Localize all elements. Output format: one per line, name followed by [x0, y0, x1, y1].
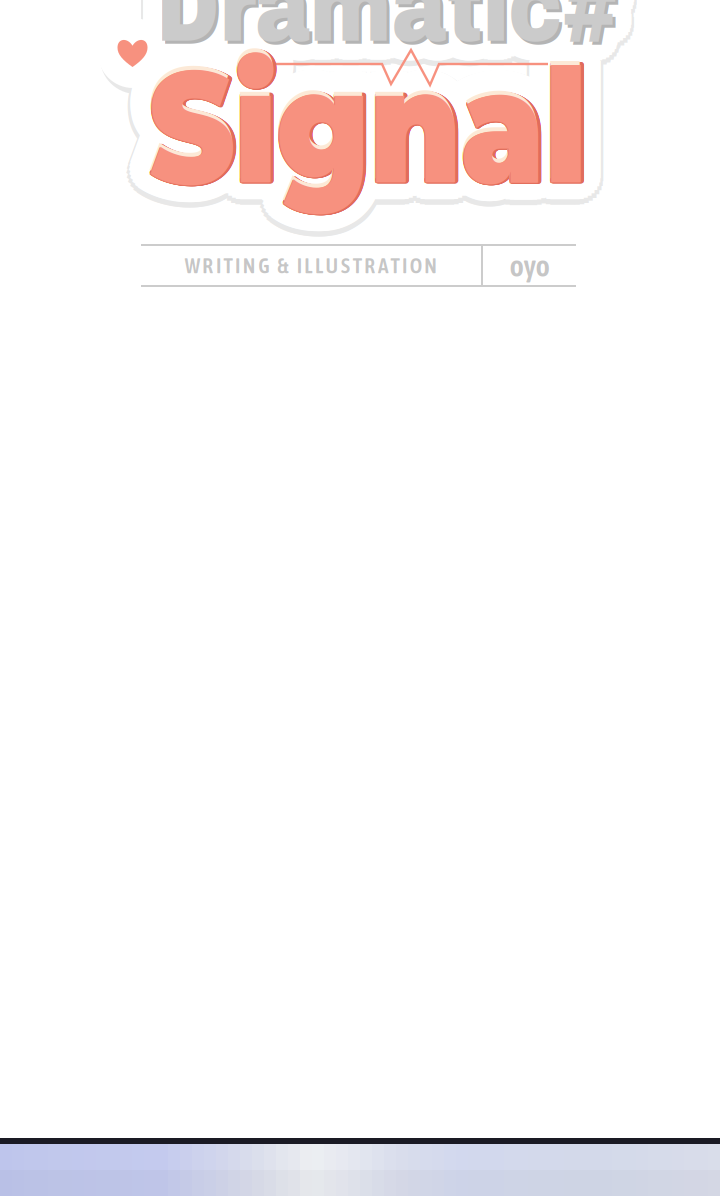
staticText: Signal	[148, 28, 676, 220]
staticText: Signal	[150, 31, 678, 223]
staticText: Dramatic#	[168, 0, 720, 46]
staticText: Dramatic#	[164, 0, 720, 84]
staticText: Dramatic#	[144, 0, 701, 72]
staticText: Signal	[165, 46, 693, 237]
staticText: Dramatic#	[141, 0, 698, 49]
staticText: Dramatic#	[153, 0, 710, 55]
staticText: Signal	[141, 27, 669, 219]
staticText: Dramatic#	[157, 0, 714, 68]
staticText: Signal	[170, 38, 698, 230]
staticText: Signal	[148, 29, 676, 221]
staticText: Signal	[163, 41, 691, 233]
staticText: Signal	[152, 28, 680, 220]
staticText: Signal	[153, 52, 681, 244]
staticText: Signal	[167, 34, 695, 226]
staticText: Signal	[148, 13, 676, 205]
staticText: Dramatic#	[152, 0, 709, 80]
staticText: Dramatic#	[165, 0, 720, 52]
staticText: Signal	[151, 19, 679, 211]
staticText: Signal	[145, 32, 673, 224]
staticText: Signal	[169, 30, 697, 222]
staticText: Signal	[159, 18, 687, 209]
staticText: Signal	[139, 51, 667, 242]
staticText: Signal	[150, 27, 678, 219]
staticText: Dramatic#	[160, 0, 717, 80]
staticText: Signal	[152, 47, 680, 238]
staticText: Signal	[145, 40, 673, 231]
staticText: Signal	[151, 40, 679, 231]
staticText: Dramatic#	[171, 0, 720, 79]
staticText: Signal	[152, 30, 680, 222]
staticText: Dramatic#	[177, 0, 720, 64]
staticText: Dramatic#	[136, 0, 693, 56]
staticText: Dramatic#	[134, 0, 691, 64]
staticText: Signal	[167, 18, 695, 210]
staticText: Dramatic#	[142, 0, 699, 64]
staticText: Dramatic#	[159, 0, 716, 78]
staticText: Signal	[133, 41, 661, 233]
staticText: Dramatic#	[177, 0, 720, 68]
staticText: Signal	[133, 35, 661, 227]
staticText: Signal	[132, 29, 660, 221]
staticText: Signal	[144, 20, 672, 212]
staticText: Signal	[151, 31, 679, 222]
staticText: Signal	[170, 20, 698, 212]
staticText: Signal	[148, 12, 676, 204]
staticText: Dramatic#	[160, 0, 717, 67]
staticText: Dramatic#	[162, 0, 719, 63]
staticText: Signal	[126, 38, 654, 230]
staticText: Signal	[165, 12, 693, 204]
staticText: Signal	[159, 40, 687, 232]
staticText: Signal	[148, 30, 676, 222]
staticText: Signal	[133, 23, 661, 215]
staticText: Signal	[171, 29, 699, 221]
staticText: Signal	[152, 29, 680, 221]
staticText: Dramatic#	[174, 0, 720, 69]
staticText: Dramatic#	[156, 0, 713, 48]
staticText: Signal	[148, 5, 676, 197]
staticText: Signal	[128, 16, 656, 208]
staticText: Dramatic#	[144, 0, 701, 46]
staticText: Signal	[151, 27, 679, 219]
staticText: Signal	[148, 40, 676, 232]
staticText: Signal	[144, 32, 672, 224]
staticText: Signal	[126, 20, 654, 212]
staticText: Signal	[148, 45, 676, 237]
staticText: Signal	[171, 24, 699, 216]
staticText: Signal	[130, 14, 658, 206]
staticText: Signal	[149, 31, 677, 223]
staticText: Signal	[141, 25, 669, 216]
staticText: Dramatic#	[140, 0, 697, 72]
staticText: Signal	[151, 27, 679, 219]
staticText: Dramatic#	[156, 0, 713, 61]
staticText: Dramatic#	[143, 0, 700, 59]
staticText: Signal	[153, 31, 681, 223]
staticText: Signal	[148, 47, 676, 239]
staticText: Dramatic#	[156, 0, 713, 68]
staticText: Signal	[149, 30, 677, 222]
staticText: Dramatic#	[136, 0, 693, 72]
staticText: Signal	[150, 31, 678, 223]
staticText: Dramatic#	[145, 0, 702, 45]
staticText: Dramatic#	[156, 0, 713, 74]
staticText: Dramatic#	[137, 0, 694, 65]
staticText: Dramatic#	[167, 0, 720, 54]
staticText: Dramatic#	[158, 0, 715, 55]
staticText: Signal	[143, 6, 671, 198]
staticText: Signal	[162, 29, 690, 220]
staticText: Signal	[134, 26, 662, 218]
staticText: Dramatic#	[161, 0, 718, 65]
staticText: Dramatic#	[175, 0, 720, 61]
staticText: Dramatic#	[163, 0, 720, 79]
staticText: Signal	[151, 45, 679, 236]
staticText: Signal	[139, 7, 667, 199]
staticText: Dramatic#	[169, 0, 720, 59]
staticText: Dramatic#	[167, 0, 720, 68]
staticText: Signal	[154, 30, 682, 222]
staticText: Signal	[128, 42, 656, 234]
staticText: Signal	[140, 7, 668, 198]
staticText: Dramatic#	[145, 0, 702, 68]
staticText: Signal	[154, 29, 682, 220]
staticText: Dramatic#	[143, 0, 700, 75]
staticText: Dramatic#	[152, 0, 709, 85]
